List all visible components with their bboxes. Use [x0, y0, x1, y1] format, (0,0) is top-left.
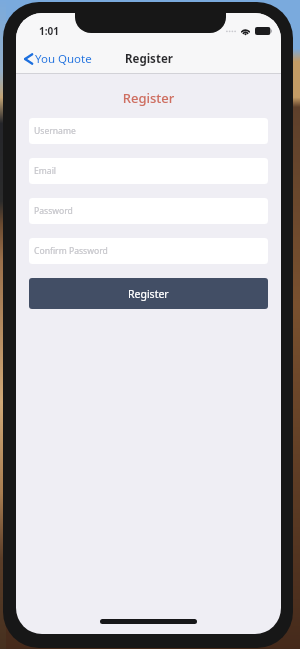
button[interactable]: Email: [29, 158, 268, 184]
staticText: You Quote: [35, 51, 92, 67]
staticText: Password: [34, 205, 73, 217]
staticText: Register: [125, 51, 173, 67]
other: Battery: [255, 27, 272, 35]
staticText: Register: [128, 287, 169, 301]
staticText: Username: [34, 125, 76, 137]
staticText: Email: [34, 165, 57, 177]
staticText: Register: [29, 89, 268, 107]
staticText: Confirm Password: [34, 245, 108, 257]
button[interactable]: Password: [29, 198, 268, 224]
other: Wi-Fi: [240, 26, 251, 35]
staticText: 1:01: [39, 24, 59, 38]
button[interactable]: Confirm Password: [29, 238, 268, 264]
button[interactable]: Username: [29, 118, 268, 144]
other: Cellular signal: [226, 27, 236, 34]
button[interactable]: You Quote: [16, 48, 96, 70]
button[interactable]: Register: [29, 278, 268, 309]
